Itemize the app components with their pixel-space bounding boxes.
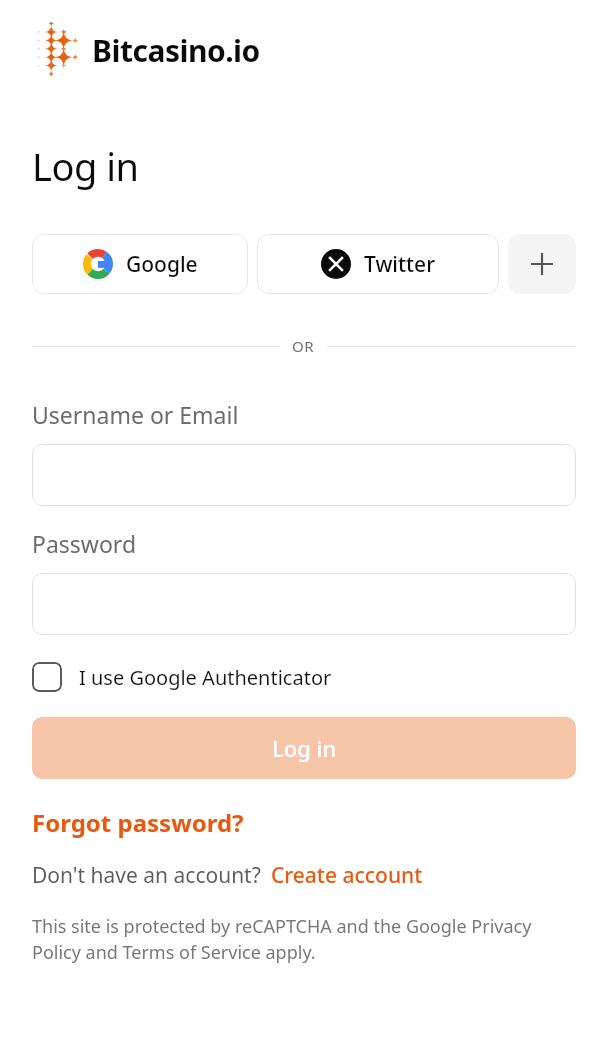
staticText: Twitter	[364, 250, 436, 279]
button[interactable]: Google	[32, 234, 248, 294]
button[interactable]: Log in	[32, 717, 576, 779]
staticText: This site is protected by reCAPTCHA and …	[32, 914, 576, 964]
staticText: Google	[126, 250, 198, 279]
button[interactable]: I use Google Authenticator	[32, 658, 332, 696]
staticText: Log in	[32, 140, 139, 192]
staticText: OR	[292, 336, 315, 356]
staticText: Log in	[272, 733, 337, 763]
staticText: Bitcasino.io	[92, 30, 260, 71]
button[interactable]: Twitter	[257, 234, 499, 294]
button[interactable]	[32, 573, 576, 635]
button[interactable]	[32, 444, 576, 506]
staticText: I use Google Authenticator	[79, 664, 332, 691]
button[interactable]: More login options	[508, 234, 576, 294]
staticText: Username or Email	[32, 399, 239, 430]
button[interactable]: Create account	[271, 861, 423, 890]
staticText: Don't have an account?	[32, 861, 261, 890]
button[interactable]: Forgot password?	[32, 806, 244, 839]
staticText: Password	[32, 528, 137, 559]
